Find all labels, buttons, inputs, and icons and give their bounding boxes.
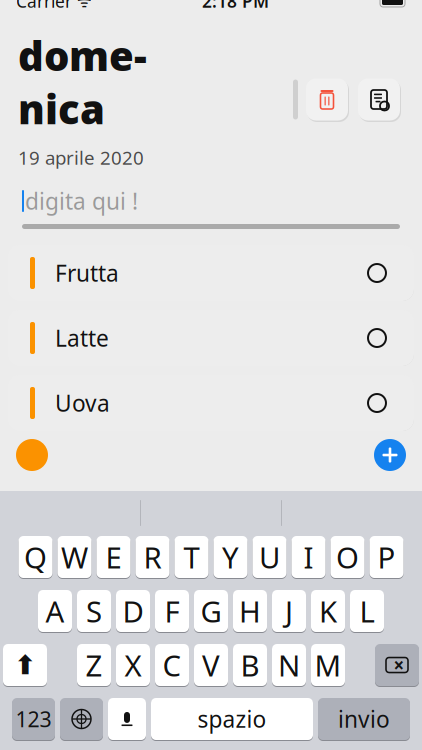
button[interactable]: Cerca [356,76,402,122]
staticText: F [164,591,179,630]
staticText: invio [338,704,390,734]
button[interactable]: Maiuscole [3,643,47,687]
staticText: N [278,645,300,684]
staticText: ⬆ [14,650,36,680]
button[interactable]: Aggiungi [374,439,406,471]
staticText: O [336,537,359,576]
button[interactable]: T [174,535,208,579]
button[interactable]: J [272,589,306,633]
button[interactable]: Colore [16,439,48,471]
staticText: X [124,645,141,684]
staticText: E [105,537,121,576]
button[interactable]: A [38,589,72,633]
staticText: G [200,591,221,630]
staticText: Z [85,645,102,684]
staticText: ᯤ [77,0,92,12]
staticText: U [259,537,280,576]
staticText: R [143,537,161,576]
staticText: digita qui ! [25,186,138,216]
button[interactable]: Z [77,643,111,687]
button[interactable]: V [194,643,228,687]
staticText: Q [24,537,47,576]
button[interactable]: spazio [151,697,313,741]
staticText: Y [222,537,239,576]
staticText: P [377,537,395,576]
staticText: S [86,591,102,630]
button[interactable]: D [116,589,150,633]
staticText: T [183,537,199,576]
button[interactable]: Dettatura [108,697,146,741]
staticText: 2:18 PM [202,0,269,12]
button[interactable]: Elimina [304,76,350,122]
button[interactable]: U [252,535,286,579]
button[interactable]: I [291,535,325,579]
staticText: × [393,653,404,677]
staticText: H [239,591,261,630]
staticText: domenica [18,29,147,135]
staticText: A [45,591,64,630]
button[interactable]: Latte [0,310,422,366]
staticText: Latte [55,323,109,353]
staticText: K [319,591,337,630]
button[interactable]: Uova [0,375,422,431]
button[interactable]: 123 [12,697,55,741]
staticText: Uova [55,388,110,418]
staticText: L [359,591,374,630]
staticText: C [162,645,181,684]
button[interactable]: P [369,535,403,579]
button[interactable]: H [233,589,267,633]
staticText: M [314,645,341,684]
button[interactable]: E [96,535,130,579]
button[interactable]: Elimina [375,643,419,687]
staticText: W [61,537,88,576]
staticText: Carrier [16,0,72,12]
staticText: 19 aprile 2020 [18,145,144,170]
button[interactable]: Q [18,535,52,579]
button[interactable]: Y [213,535,247,579]
button[interactable]: L [350,589,384,633]
button[interactable]: X [116,643,150,687]
staticText: D [122,591,143,630]
button[interactable]: G [194,589,228,633]
staticText: 123 [15,705,51,733]
button[interactable]: M [311,643,345,687]
button[interactable]: C [155,643,189,687]
button[interactable]: O [330,535,364,579]
button[interactable]: B [233,643,267,687]
staticText: Frutta [55,258,119,288]
button[interactable]: S [77,589,111,633]
staticText: B [240,645,259,684]
button[interactable]: invio [318,697,410,741]
staticText: spazio [197,704,266,734]
button[interactable]: K [311,589,345,633]
button[interactable]: F [155,589,189,633]
staticText: I [303,537,313,576]
button[interactable]: Lingua [60,697,103,741]
button[interactable]: N [272,643,306,687]
button[interactable]: W [57,535,91,579]
button[interactable]: Frutta [0,245,422,301]
staticText: V [202,645,220,684]
staticText: J [285,591,293,630]
button[interactable]: R [135,535,169,579]
